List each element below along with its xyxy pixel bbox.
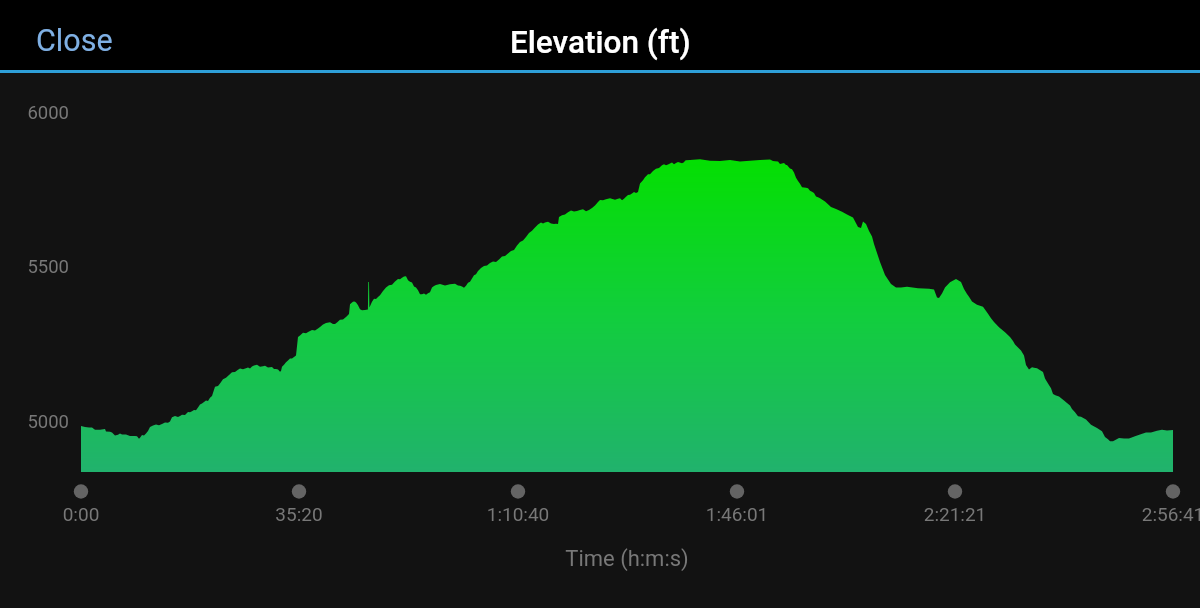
staticText: 0:00: [1, 503, 161, 525]
staticText: Close: [36, 23, 113, 59]
staticText: Time (h:m:s): [527, 546, 727, 572]
staticText: 1:46:01: [657, 503, 817, 525]
staticText: 5500: [1, 256, 69, 278]
staticText: 1:10:40: [438, 503, 598, 525]
staticText: 2:21:21: [875, 503, 1035, 525]
button[interactable]: Close: [0, 0, 141, 70]
staticText: 6000: [1, 102, 69, 124]
staticText: Elevation (ft): [510, 24, 691, 61]
staticText: 2:56:41: [1093, 503, 1200, 525]
staticText: 5000: [1, 411, 69, 433]
staticText: 35:20: [219, 503, 379, 525]
